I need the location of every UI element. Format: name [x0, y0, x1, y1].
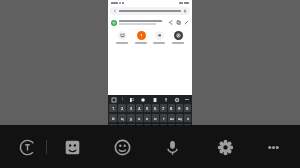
button[interactable]: щ [176, 114, 183, 122]
button[interactable]: 6 [152, 104, 159, 112]
button[interactable]: о [160, 124, 167, 132]
button[interactable]: Keyboard tool 5 [174, 97, 179, 102]
button[interactable]: д [176, 124, 183, 132]
button[interactable]: Copy [176, 20, 181, 25]
button[interactable]: Voice search [110, 7, 190, 15]
staticText: з [187, 116, 189, 121]
button[interactable]: ж [184, 124, 191, 132]
staticText: у [130, 116, 133, 121]
button[interactable]: л [168, 124, 175, 132]
button[interactable]: Keyboard tool 2 [140, 97, 145, 102]
button[interactable]: More options [260, 134, 286, 160]
staticText: е [146, 116, 149, 121]
button[interactable]: / [129, 144, 136, 152]
button[interactable]: . [162, 144, 169, 152]
button[interactable]: г [160, 114, 167, 122]
button[interactable]: 2 [118, 104, 126, 112]
staticText: ш [170, 116, 174, 121]
button[interactable]: ы [118, 124, 126, 132]
button[interactable]: Voice input [159, 134, 185, 160]
staticText: 1 [112, 106, 115, 111]
button[interactable]: Keyboard tool 0 [111, 97, 116, 102]
staticText: 3 [130, 106, 133, 111]
button[interactable]: ч [126, 134, 133, 142]
button[interactable]: Share [108, 16, 192, 29]
button[interactable]: ш [168, 114, 175, 122]
button[interactable]: Share [168, 20, 173, 25]
staticText: 8 [170, 106, 173, 111]
button[interactable]: н [152, 114, 159, 122]
button[interactable]: Stickers [59, 134, 85, 160]
button[interactable]: Keyboard tool 4 [163, 97, 168, 102]
staticText: г [163, 116, 165, 121]
staticText: щ [178, 116, 182, 121]
button[interactable]: Keyboard tool 3 [152, 97, 157, 102]
button[interactable]: 9 [176, 104, 183, 112]
button[interactable]: 4 [136, 104, 143, 112]
button[interactable] [115, 31, 129, 44]
button[interactable]: 0 [184, 104, 191, 112]
button[interactable] [134, 31, 148, 44]
button[interactable]: е [144, 114, 151, 122]
button[interactable]: 3 [127, 104, 135, 112]
button[interactable]: й [109, 114, 117, 122]
button[interactable]: к [136, 114, 143, 122]
staticText: 2 [121, 106, 124, 111]
button[interactable]: а [136, 124, 143, 132]
staticText: 7 [162, 106, 165, 111]
button[interactable]: Key [170, 144, 180, 152]
button[interactable]: 5 [144, 104, 151, 112]
button[interactable]: , [121, 144, 128, 152]
button[interactable]: 7 [160, 104, 167, 112]
button[interactable] [152, 31, 166, 44]
button[interactable]: я [118, 134, 125, 142]
button[interactable]: у [127, 114, 135, 122]
button[interactable]: 1 [109, 104, 117, 112]
staticText: к [138, 116, 141, 121]
staticText: я [120, 136, 123, 141]
button[interactable]: р [152, 124, 159, 132]
staticText: й [112, 116, 115, 121]
button[interactable]: Settings [212, 134, 238, 160]
button[interactable]: п [144, 124, 151, 132]
staticText: н [154, 116, 157, 121]
button[interactable] [171, 31, 185, 44]
button[interactable]: з [184, 114, 191, 122]
button[interactable]: Keyboard tool 1 [129, 97, 134, 102]
button[interactable]: ц [118, 114, 126, 122]
button[interactable]: Translate [14, 134, 40, 160]
button[interactable]: в [127, 124, 135, 132]
button[interactable]: ф [109, 124, 117, 132]
button[interactable]: Key [109, 144, 120, 152]
button[interactable]: Emoji [109, 134, 135, 160]
staticText: 6 [154, 106, 157, 111]
button[interactable]: ь [166, 134, 173, 142]
button[interactable]: Edit [184, 20, 189, 25]
button[interactable]: 8 [168, 104, 175, 112]
button[interactable]: б [174, 134, 181, 142]
